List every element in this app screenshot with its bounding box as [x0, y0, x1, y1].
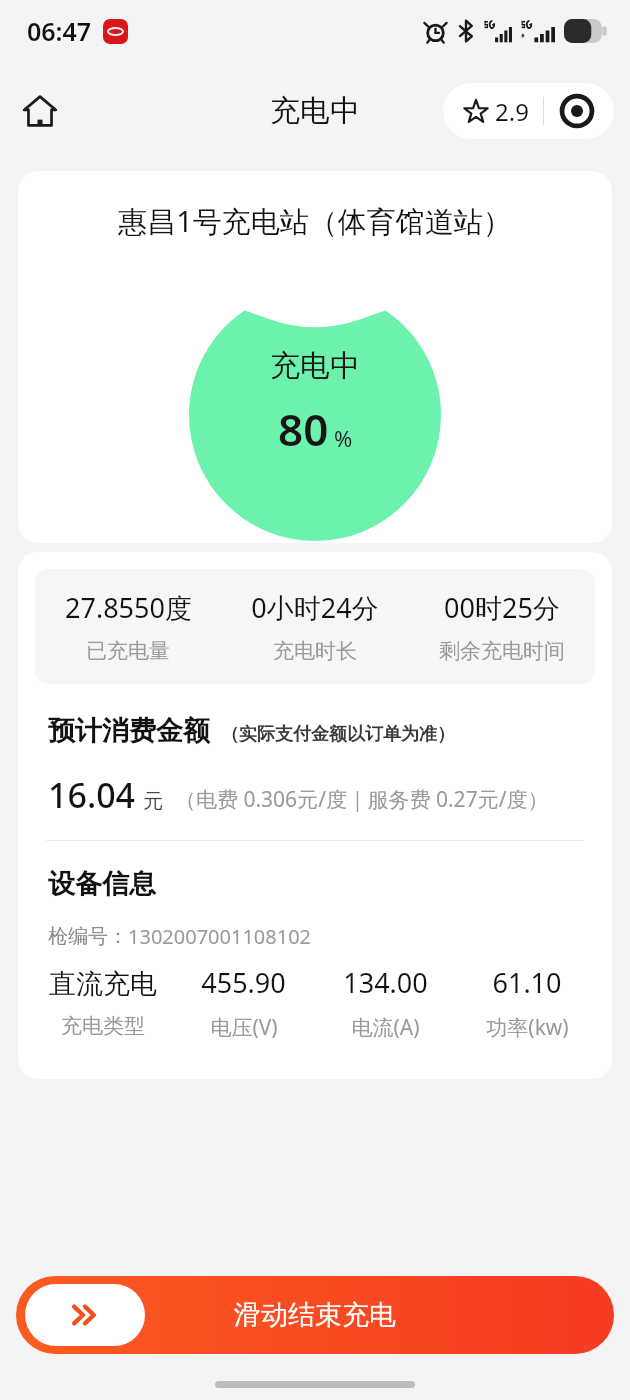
button[interactable]: 惠昌1号充电站（体育馆道站） — [18, 171, 612, 543]
staticText: 充电类型 — [61, 1013, 145, 1039]
staticText: 充电中 — [270, 92, 360, 130]
staticText: 惠昌1号充电站（体育馆道站） — [118, 201, 512, 241]
staticText: 00时25分 — [444, 589, 560, 626]
button[interactable]: 2.9 — [443, 83, 614, 139]
staticText: 枪编号： — [48, 924, 128, 949]
staticText: 1302007001108102 — [128, 923, 312, 950]
staticText: 充电时长 — [273, 638, 357, 664]
staticText: 预计消费金额 — [48, 714, 210, 748]
staticText: 滑动结束充电 — [234, 1298, 396, 1332]
button[interactable]: Home — [14, 85, 66, 137]
staticText: 设备信息 — [48, 867, 156, 901]
staticText: 功率(kw) — [486, 1013, 569, 1042]
staticText: （电费 0.306元/度｜服务费 0.27元/度） — [175, 785, 549, 814]
staticText: 电流(A) — [351, 1013, 420, 1042]
staticText: % — [334, 423, 353, 453]
staticText: 27.8550度 — [65, 589, 192, 626]
staticText: 134.00 — [343, 964, 428, 1001]
staticText: 充电中 — [270, 347, 360, 385]
button[interactable]: 27.8550度 — [35, 569, 595, 684]
staticText: 剩余充电时间 — [439, 638, 565, 664]
staticText: 61.10 — [492, 964, 562, 1001]
staticText: 直流充电 — [49, 967, 157, 1001]
staticText: 2.9 — [495, 95, 529, 128]
staticText: 06:47 — [27, 14, 92, 48]
staticText: 16.04 — [48, 772, 136, 818]
staticText: 455.90 — [201, 964, 286, 1001]
staticText: 元 — [143, 789, 163, 814]
staticText: （实际支付金额以订单为准） — [221, 723, 455, 746]
staticText: 电压(V) — [210, 1013, 278, 1042]
button[interactable]: 滑动结束充电 — [16, 1276, 614, 1354]
staticText: 80 — [278, 399, 329, 459]
staticText: 已充电量 — [86, 638, 170, 664]
staticText: 0小时24分 — [251, 589, 379, 626]
